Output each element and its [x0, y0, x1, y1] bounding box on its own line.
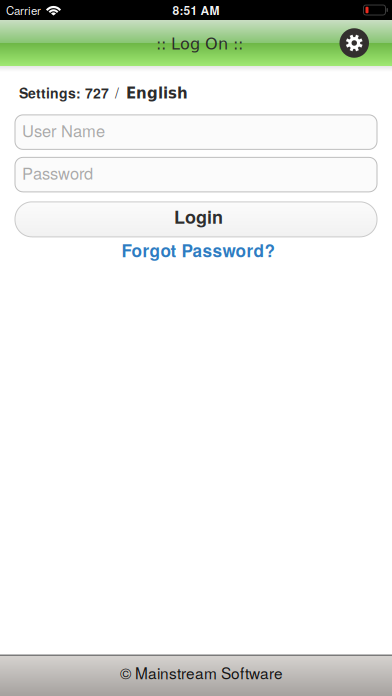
staticText: User Name	[22, 118, 105, 142]
button[interactable]: Login	[15, 202, 377, 237]
staticText: English	[126, 85, 188, 102]
staticText: Password	[22, 161, 93, 184]
staticText: Login	[174, 203, 223, 229]
button[interactable]: Settings	[339, 28, 369, 58]
staticText: Settings: 727	[19, 83, 109, 103]
button[interactable]: User Name	[15, 115, 377, 149]
staticText: /	[115, 82, 119, 102]
button[interactable]: Password	[15, 157, 377, 192]
staticText: Forgot Password?	[121, 238, 275, 262]
button[interactable]: Forgot Password?	[116, 238, 275, 262]
staticText: 8:51 AM	[172, 1, 219, 19]
staticText: © Mainstream Software	[120, 661, 283, 684]
staticText: :: Log On ::	[156, 35, 243, 53]
staticText: Carrier	[6, 2, 41, 18]
